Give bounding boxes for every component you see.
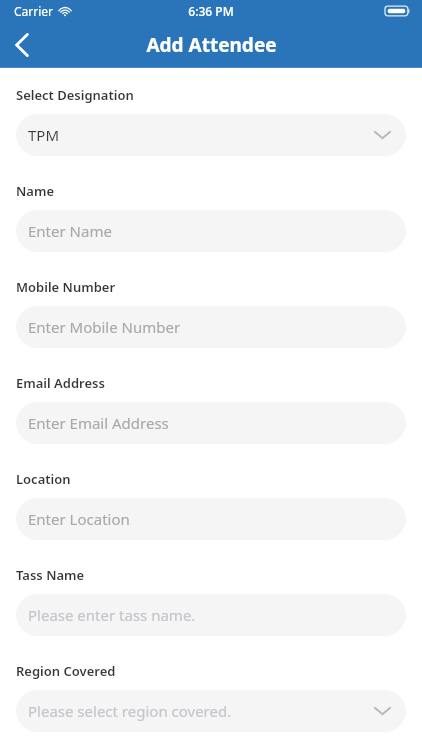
button[interactable]: Enter Location xyxy=(16,498,406,540)
staticText: Enter Mobile Number xyxy=(28,317,181,337)
staticText: Enter Name xyxy=(28,221,112,241)
staticText: Enter Email Address xyxy=(28,413,169,433)
staticText: Email Address xyxy=(16,374,105,392)
staticText: Region Covered xyxy=(16,662,116,680)
staticText: Enter Location xyxy=(28,509,130,529)
button[interactable]: Please enter tass name. xyxy=(16,594,406,636)
button[interactable]: Enter Email Address xyxy=(16,402,406,444)
button[interactable]: TPM xyxy=(16,114,406,156)
staticText: Add Attendee xyxy=(146,32,277,58)
staticText: Location xyxy=(16,470,71,488)
button[interactable]: Please select region covered. xyxy=(16,690,406,732)
staticText: Mobile Number xyxy=(16,278,116,296)
staticText: Select Designation xyxy=(16,86,134,104)
staticText: Please enter tass name. xyxy=(28,605,196,625)
staticText: 6:36 PM xyxy=(188,3,234,19)
staticText: Please select region covered. xyxy=(28,701,232,721)
staticText: TPM xyxy=(28,125,60,145)
button[interactable]: Enter Mobile Number xyxy=(16,306,406,348)
staticText: Tass Name xyxy=(16,566,85,584)
button[interactable]: Enter Name xyxy=(16,210,406,252)
staticText: Carrier xyxy=(14,3,54,19)
staticText: Name xyxy=(16,182,54,200)
button[interactable]: Back xyxy=(0,23,44,67)
